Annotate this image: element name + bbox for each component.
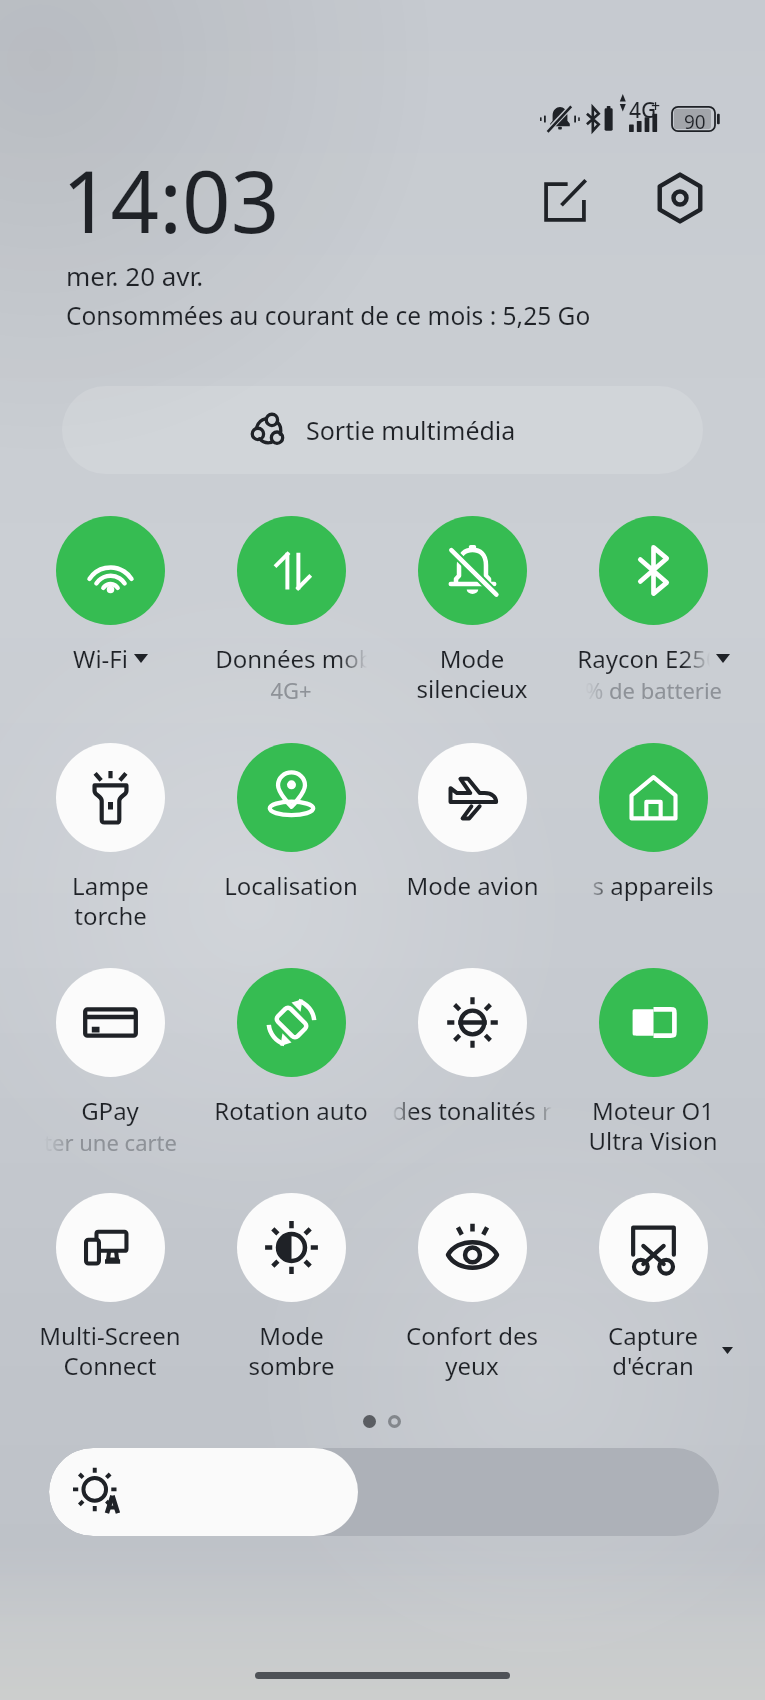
staticText: mer. 20 avr. <box>66 258 204 293</box>
staticText: Données mobiles <box>215 642 367 675</box>
staticText: % de batterie <box>585 675 722 705</box>
button[interactable]: Moteur O1 Ultra Vision <box>563 968 743 1158</box>
staticText: Localisation <box>224 869 358 902</box>
button[interactable]: des tonalités r <box>382 968 562 1158</box>
staticText: ter une carte <box>44 1127 177 1157</box>
staticText: Multi-Screen Connect <box>39 1319 181 1382</box>
staticText: Rotation auto <box>214 1094 368 1127</box>
staticText: + <box>651 95 661 117</box>
staticText: Moteur O1 Ultra Vision <box>588 1094 718 1157</box>
button[interactable]: Settings <box>645 163 715 233</box>
button[interactable]: Rotation auto <box>201 968 381 1158</box>
staticText: 4G <box>629 96 657 125</box>
button[interactable]: Brightness <box>49 1448 719 1536</box>
staticText: s appareils <box>585 869 721 902</box>
staticText: Lampe torche <box>72 869 149 932</box>
staticText: 90 <box>684 109 706 135</box>
staticText: GPay <box>81 1094 139 1127</box>
staticText: Mode sombre <box>248 1319 335 1382</box>
button[interactable]: Localisation <box>201 743 381 933</box>
button[interactable]: GPay <box>20 968 200 1158</box>
button[interactable]: Edit quick settings <box>530 165 600 235</box>
button[interactable]: Mode avion <box>382 743 562 933</box>
staticText: 4G+ <box>270 675 312 705</box>
staticText: Confort des yeux <box>406 1319 538 1382</box>
button[interactable]: Capture d'écran <box>563 1193 743 1383</box>
button[interactable]: Mode sombre <box>201 1193 381 1383</box>
staticText: Mode silencieux <box>416 642 528 705</box>
button[interactable]: Sortie multimédia <box>62 386 703 474</box>
button[interactable]: Mode silencieux <box>382 516 562 706</box>
button[interactable]: s appareils <box>563 743 743 933</box>
staticText: Mode avion <box>406 869 539 902</box>
button[interactable]: Raycon E250 <box>563 516 743 706</box>
staticText: Capture d'écran <box>608 1319 698 1382</box>
button[interactable]: Données mobiles <box>201 516 381 706</box>
button[interactable]: Wi-Fi <box>20 516 200 706</box>
staticText: des tonalités r <box>392 1094 552 1127</box>
staticText: Sortie multimédia <box>306 413 516 447</box>
staticText: Wi-Fi <box>73 642 128 675</box>
button[interactable]: Multi-Screen Connect <box>20 1193 200 1383</box>
staticText: 14:03 <box>62 142 280 258</box>
button[interactable]: Confort des yeux <box>382 1193 562 1383</box>
staticText: Raycon E250 <box>577 642 710 675</box>
staticText: Consommées au courant de ce mois : 5,25 … <box>66 299 591 332</box>
button[interactable]: Lampe torche <box>20 743 200 933</box>
